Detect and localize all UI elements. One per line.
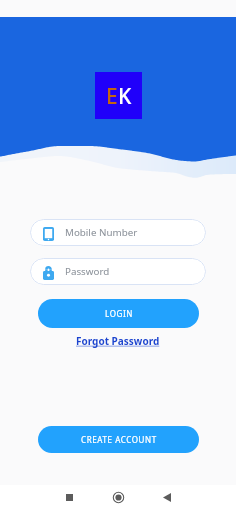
staticText: Mobile Number [65,226,138,239]
button[interactable]: LOGIN [38,299,199,328]
button[interactable]: Recent apps [59,487,79,507]
staticText: Forgot Password [76,334,160,348]
button[interactable]: CREATE ACCOUNT [38,426,199,453]
staticText: K [118,82,132,111]
button[interactable]: Back [157,487,177,507]
staticText: CREATE ACCOUNT [81,434,157,445]
staticText: Password [65,265,110,278]
staticText: LOGIN [105,308,133,319]
button[interactable]: Forgot Password [76,334,160,348]
button[interactable]: Mobile Number [30,219,206,246]
staticText: E [106,82,118,111]
button[interactable]: Home [108,487,128,507]
button[interactable]: Password [30,258,206,285]
